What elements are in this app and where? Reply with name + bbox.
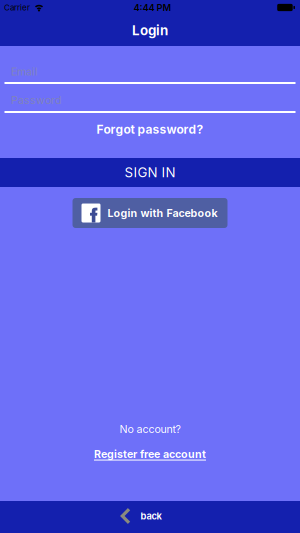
staticText: back bbox=[140, 510, 161, 521]
staticText: Login bbox=[132, 23, 168, 38]
button[interactable]: Forgot password? bbox=[96, 121, 203, 137]
staticText: Password bbox=[11, 94, 62, 106]
staticText: SIGN IN bbox=[124, 165, 175, 180]
staticText: Register free account bbox=[94, 448, 206, 460]
staticText: 4:44 PM bbox=[133, 2, 171, 13]
button[interactable]: Back bbox=[0, 501, 300, 533]
staticText: Carrier bbox=[4, 3, 30, 12]
staticText: No account? bbox=[119, 423, 180, 435]
staticText: Forgot password? bbox=[96, 122, 203, 137]
button[interactable]: SIGN IN bbox=[0, 158, 300, 187]
staticText: Login with Facebook bbox=[107, 207, 217, 219]
button[interactable]: Register free account bbox=[94, 445, 206, 463]
staticText: Email bbox=[11, 65, 38, 78]
button[interactable]: Login with Facebook bbox=[72, 198, 227, 228]
